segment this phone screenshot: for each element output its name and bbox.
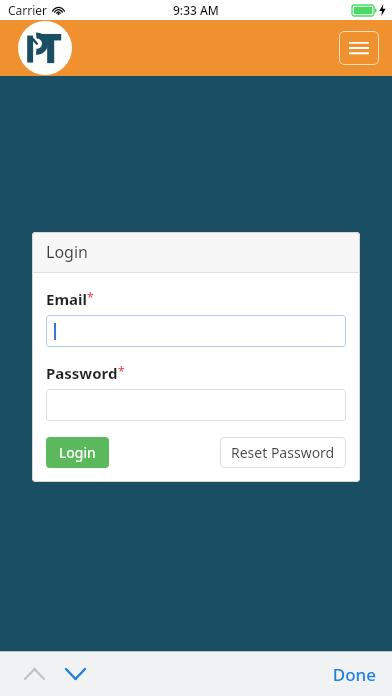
button[interactable]: Home [18, 21, 72, 75]
button[interactable] [46, 389, 346, 421]
staticText: Reset Password [231, 443, 335, 462]
button[interactable]: Next field [55, 654, 95, 694]
staticText: 9:33 AM [173, 2, 219, 18]
button[interactable]: Menu [339, 31, 379, 65]
staticText: Email [46, 289, 87, 309]
staticText: Done [332, 663, 376, 686]
button[interactable]: Reset Password [220, 437, 346, 468]
button[interactable]: Login [46, 437, 109, 468]
staticText: Carrier [8, 2, 48, 18]
staticText: * [87, 289, 94, 305]
staticText: * [118, 363, 125, 379]
button[interactable]: Previous field [14, 654, 54, 694]
button[interactable]: Done [316, 655, 392, 694]
staticText: Login [59, 443, 96, 462]
button[interactable] [46, 315, 346, 347]
staticText: Password [46, 363, 118, 383]
staticText: Login [46, 241, 88, 263]
